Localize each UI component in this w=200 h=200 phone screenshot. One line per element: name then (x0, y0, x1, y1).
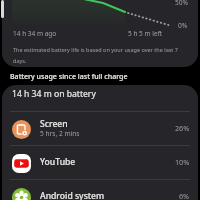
staticText: 5 hrs, 2 mins (40, 129, 80, 138)
staticText: 14 h 34 m on battery (12, 88, 96, 100)
button[interactable]: Screen (2, 111, 198, 145)
staticText: 0% (178, 21, 188, 30)
staticText: 50% (175, 0, 189, 7)
staticText: 5 h 5 m left (128, 29, 163, 38)
staticText: YouTube (40, 156, 76, 168)
staticText: Battery usage since last full charge (10, 71, 128, 81)
button[interactable]: Android system (2, 179, 198, 200)
staticText: The estimated battery life is based on y… (13, 46, 185, 64)
other: Screen (12, 120, 31, 139)
other: Android system (12, 188, 31, 200)
staticText: Android system (40, 190, 105, 200)
staticText: 14 h 34 m ago (13, 29, 57, 38)
staticText: 26% (175, 123, 190, 133)
staticText: 10% (175, 157, 190, 167)
staticText: Screen (40, 118, 68, 130)
button[interactable]: YouTube (2, 145, 198, 179)
other: YouTube (12, 154, 31, 173)
staticText: 6% (179, 191, 190, 200)
